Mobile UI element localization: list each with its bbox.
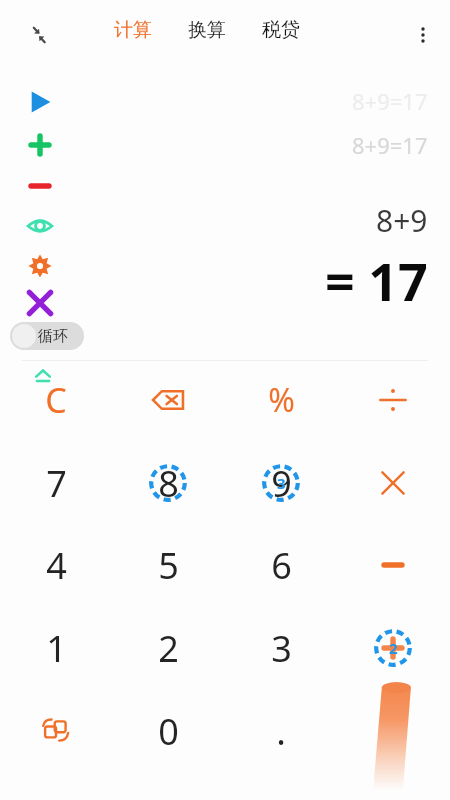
staticText: C [45,377,67,423]
staticText: 换算 [188,18,226,42]
button[interactable]: Multiply [337,442,449,524]
button[interactable]: Divide [337,359,449,441]
staticText: 8+9 [376,200,428,241]
staticText: 税贷 [262,18,300,42]
button[interactable]: 3 [225,607,337,689]
button[interactable]: 4 [0,524,112,606]
button[interactable]: Expand history [30,364,56,390]
staticText: 3 [277,473,286,493]
button[interactable]: Collapse [22,18,56,52]
staticText: 计算 [114,18,152,42]
staticText: 0 [158,707,179,756]
button[interactable]: Close [21,284,59,322]
button[interactable]: % [225,359,337,441]
staticText: = 17 [325,245,428,316]
button[interactable]: 8 [112,442,224,524]
staticText: 8 [158,459,179,508]
button[interactable]: Add [337,607,449,689]
button[interactable]: 税贷 [258,14,304,46]
staticText: 2 [389,638,398,658]
button[interactable]: Run [21,83,59,121]
button[interactable]: 1 [0,607,112,689]
button[interactable]: Preview [21,207,59,245]
button[interactable]: 5 [112,524,224,606]
button[interactable]: Remove [21,167,59,205]
button[interactable]: 6 [225,524,337,606]
staticText: % [268,378,295,422]
staticText: 2 [158,624,179,673]
staticText: 8+9=17 [352,86,428,116]
button[interactable]: 换算 [184,14,230,46]
button[interactable]: 9 [225,442,337,524]
button[interactable]: 计算 [110,14,156,46]
button[interactable]: Equals [337,681,449,791]
staticText: 3 [271,624,292,673]
staticText: 9 [271,459,292,508]
staticText: 循环 [38,327,68,346]
button[interactable]: More options [404,16,442,54]
button[interactable]: 循环 [10,322,84,350]
button[interactable]: Convert [0,690,112,772]
button[interactable]: 2 [112,607,224,689]
button[interactable]: Subtract [337,524,449,606]
staticText: 8+9=17 [352,130,428,160]
staticText: 4 [46,541,67,590]
button[interactable]: 0 [112,690,224,772]
button[interactable]: Settings [21,247,59,285]
button[interactable]: 7 [0,442,112,524]
button[interactable]: Backspace [112,359,224,441]
staticText: 6 [271,541,292,590]
button[interactable]: C [0,359,112,441]
button[interactable]: . [225,690,337,772]
staticText: 7 [46,459,67,508]
staticText: 5 [158,541,179,590]
staticText: . [276,707,286,756]
button[interactable]: Add [21,126,59,164]
staticText: 1 [46,624,67,673]
